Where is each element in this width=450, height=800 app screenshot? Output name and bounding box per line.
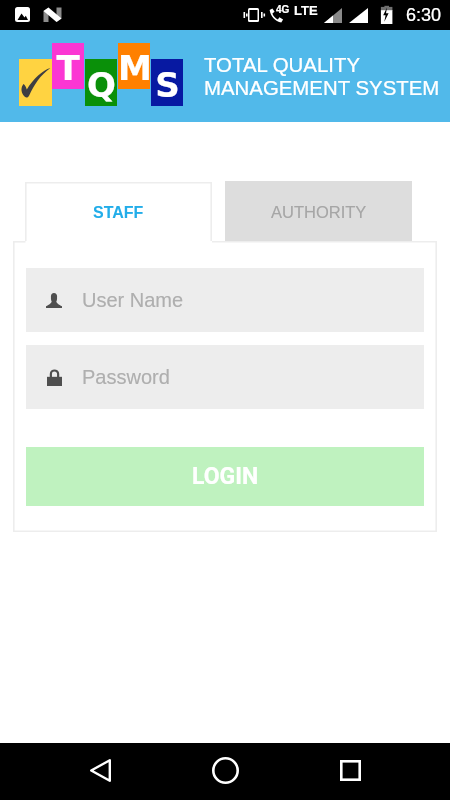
staticText: S xyxy=(155,65,180,105)
staticText: TOTAL QUALITY xyxy=(204,54,360,77)
staticText: STAFF xyxy=(93,204,144,222)
button[interactable]: Recent apps xyxy=(320,742,380,799)
button[interactable]: STAFF xyxy=(25,182,212,243)
button[interactable]: Back xyxy=(70,742,130,799)
staticText: MANAGEMENT SYSTEM xyxy=(204,77,440,100)
staticText: User Name xyxy=(82,289,184,311)
staticText: T xyxy=(56,48,80,88)
staticText: LOGIN xyxy=(192,463,259,490)
button[interactable]: LOGIN xyxy=(26,447,424,506)
staticText: 6:30 xyxy=(406,5,442,25)
staticText: M xyxy=(118,48,150,88)
staticText: Q xyxy=(87,65,116,105)
button[interactable]: AUTHORITY xyxy=(225,181,412,242)
staticText: AUTHORITY xyxy=(271,203,367,221)
button[interactable]: Home xyxy=(195,742,255,799)
button[interactable]: User Name xyxy=(26,268,424,332)
staticText: 4G xyxy=(276,4,290,15)
staticText: LTE xyxy=(294,3,318,18)
staticText: Password xyxy=(82,366,170,388)
button[interactable]: Password xyxy=(26,345,424,409)
